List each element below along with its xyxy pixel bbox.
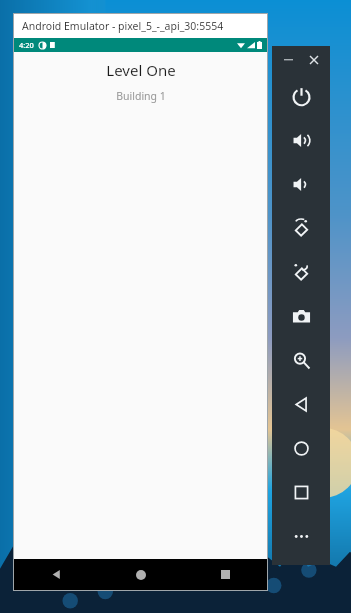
button[interactable]: Android Emulator - pixel_5_-_api_30:5554 [14,14,267,38]
button[interactable]: Rotate left [272,206,330,250]
staticText: 4:20 [19,40,34,50]
button[interactable]: Overview [272,470,330,514]
button[interactable]: Power [272,74,330,118]
button[interactable]: Volume down [272,162,330,206]
staticText: Level One [106,60,176,80]
button[interactable]: Volume up [272,118,330,162]
button[interactable]: Back [14,559,99,590]
staticText: Building 1 [116,89,166,103]
button[interactable]: Close [305,51,323,69]
button[interactable]: More [272,514,330,558]
staticText: Android Emulator - pixel_5_-_api_30:5554 [22,19,224,33]
button[interactable]: Recent apps [183,559,267,590]
button[interactable]: Minimize [279,51,297,69]
button[interactable]: Rotate right [272,250,330,294]
button[interactable]: Take screenshot [272,294,330,338]
button[interactable]: Zoom [272,338,330,382]
button[interactable]: Home [99,559,183,590]
button[interactable]: Back [272,382,330,426]
button[interactable]: Home [272,426,330,470]
